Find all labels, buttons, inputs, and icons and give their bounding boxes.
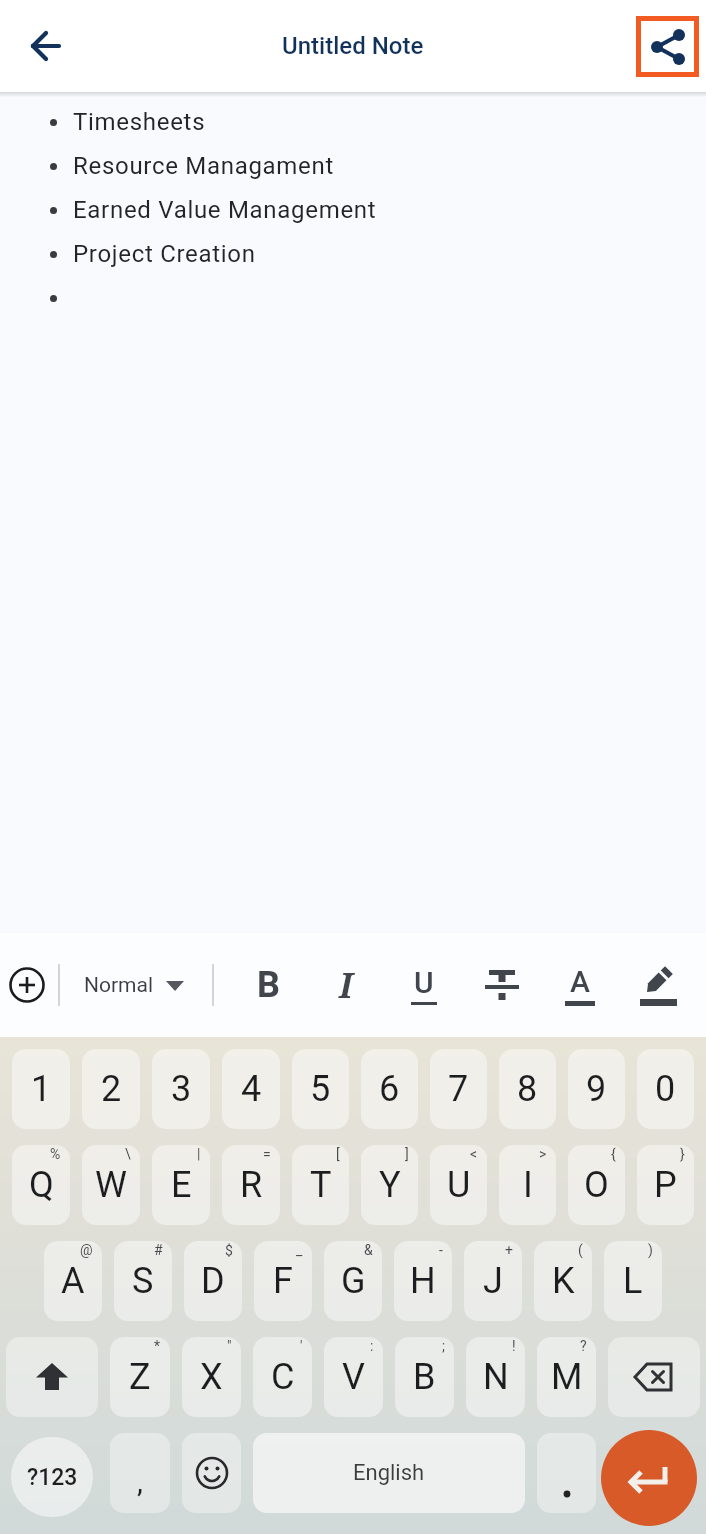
button[interactable]: 5 [292,1049,349,1129]
staticText: ) [648,1242,653,1258]
button[interactable]: U [385,933,463,1037]
button[interactable]: J [464,1241,522,1321]
staticText: Project Creation [73,240,256,268]
button[interactable]: English [253,1433,525,1513]
staticText: W [95,1164,127,1206]
button[interactable]: C [253,1337,312,1417]
button[interactable]: 8 [499,1049,556,1129]
staticText: 9 [586,1068,607,1110]
staticText: $ [225,1242,233,1258]
staticText: ? [580,1338,587,1354]
button[interactable]: 0 [637,1049,694,1129]
button[interactable]: L [604,1241,662,1321]
button[interactable]: I [307,933,385,1037]
staticText: S [132,1260,154,1302]
button[interactable]: X [182,1337,241,1417]
staticText: 8 [517,1068,538,1110]
button[interactable] [537,1433,596,1513]
button[interactable]: I [499,1145,556,1225]
staticText: P [654,1164,677,1206]
staticText: - [439,1242,443,1258]
button[interactable]: 1 [12,1049,70,1129]
button[interactable] [619,933,697,1037]
staticText: 5 [310,1068,331,1110]
button[interactable]: , [110,1433,170,1513]
button[interactable]: Z [110,1337,170,1417]
staticText: D [201,1260,225,1302]
staticText: Z [129,1356,151,1398]
staticText: 4 [241,1068,262,1110]
button[interactable]: E [152,1145,210,1225]
staticText: B [257,964,280,1006]
staticText: 1 [31,1068,52,1110]
staticText: + [505,1242,513,1258]
button[interactable]: Q [12,1145,70,1225]
button[interactable]: A [44,1241,102,1321]
button[interactable]: N [466,1337,525,1417]
staticText: 7 [448,1068,469,1110]
staticText: # [154,1242,163,1258]
button[interactable]: U [430,1145,487,1225]
staticText: = [263,1146,271,1162]
staticText: : [370,1338,374,1354]
button[interactable]: 7 [430,1049,487,1129]
staticText: ; [442,1338,445,1354]
button[interactable]: S [114,1241,172,1321]
button[interactable] [6,1337,98,1417]
button[interactable]: M [537,1337,596,1417]
button[interactable]: A [541,933,619,1037]
button[interactable]: V [324,1337,383,1417]
staticText: @ [80,1242,93,1258]
button[interactable]: 3 [152,1049,210,1129]
button[interactable]: F [254,1241,312,1321]
button[interactable] [463,933,541,1037]
staticText: > [539,1146,547,1162]
staticText: 3 [171,1068,192,1110]
button[interactable] [8,966,46,1004]
button[interactable]: 2 [82,1049,140,1129]
staticText: ] [405,1146,409,1162]
staticText: 0 [655,1068,676,1110]
button[interactable]: Normal [84,973,184,998]
staticText: H [410,1260,436,1302]
staticText: \ [125,1146,131,1162]
staticText: ' [300,1338,303,1354]
staticText: X [200,1356,223,1398]
staticText: O [584,1164,609,1206]
button[interactable]: ?123 [11,1437,93,1517]
button[interactable]: K [534,1241,592,1321]
staticText: Normal [84,973,154,998]
staticText: ! [512,1338,516,1354]
staticText: C [271,1356,295,1398]
button[interactable]: P [637,1145,694,1225]
button[interactable]: T [292,1145,349,1225]
button[interactable]: 6 [361,1049,418,1129]
button[interactable] [636,16,699,77]
staticText: U [414,965,434,1000]
button[interactable]: B [229,933,307,1037]
staticText: V [342,1356,365,1398]
button[interactable] [182,1433,241,1513]
staticText: I [339,962,353,1008]
staticText: Y [379,1164,401,1206]
button[interactable]: G [324,1241,382,1321]
button[interactable] [601,1430,697,1526]
staticText: B [413,1356,436,1398]
staticText: L [623,1260,643,1302]
button[interactable]: B [395,1337,454,1417]
button[interactable]: O [568,1145,625,1225]
staticText: J [483,1260,503,1302]
button[interactable] [608,1337,700,1417]
staticText: " [227,1338,232,1354]
staticText: ?123 [27,1464,78,1491]
button[interactable] [24,24,68,68]
button[interactable]: 4 [222,1049,280,1129]
staticText: | [197,1146,201,1162]
button[interactable]: W [82,1145,140,1225]
button[interactable]: R [222,1145,280,1225]
button[interactable]: D [184,1241,242,1321]
button[interactable]: Y [361,1145,418,1225]
button[interactable]: H [394,1241,452,1321]
staticText: < [470,1146,478,1162]
button[interactable]: 9 [568,1049,625,1129]
